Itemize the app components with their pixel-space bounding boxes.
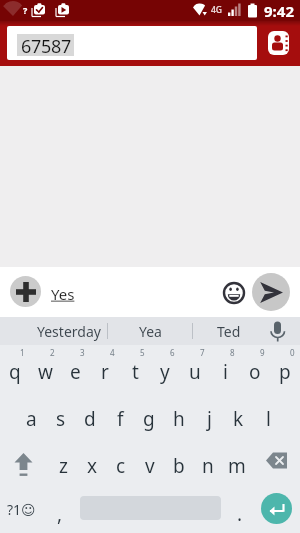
staticText: s bbox=[56, 406, 66, 432]
button[interactable]: 67587 bbox=[7, 26, 257, 60]
staticText: 2 bbox=[50, 347, 55, 357]
button[interactable]: j bbox=[194, 392, 224, 439]
button[interactable] bbox=[228, 486, 252, 533]
staticText: k bbox=[233, 406, 244, 432]
staticText: x bbox=[87, 453, 98, 479]
button[interactable]: i bbox=[210, 345, 240, 392]
button[interactable]: d bbox=[75, 392, 105, 439]
button[interactable]: x bbox=[77, 439, 107, 486]
staticText: . bbox=[237, 501, 243, 527]
button[interactable] bbox=[10, 276, 41, 307]
button[interactable]: z bbox=[48, 439, 78, 486]
staticText: Yea bbox=[139, 322, 162, 341]
staticText: q bbox=[9, 359, 21, 385]
button[interactable]: Yesterday bbox=[31, 317, 107, 345]
staticText: y bbox=[160, 359, 170, 385]
staticText: l bbox=[266, 406, 271, 432]
staticText: 9 bbox=[260, 347, 265, 357]
staticText: z bbox=[59, 453, 68, 479]
button[interactable] bbox=[268, 31, 289, 55]
staticText: i bbox=[223, 359, 228, 385]
staticText: n bbox=[202, 453, 214, 479]
button[interactable]: n bbox=[193, 439, 223, 486]
button[interactable]: Yea bbox=[108, 317, 192, 345]
button[interactable]: p bbox=[270, 345, 300, 392]
button[interactable] bbox=[261, 493, 292, 524]
button[interactable]: m bbox=[222, 439, 252, 486]
button[interactable]: f bbox=[105, 392, 135, 439]
staticText: o bbox=[249, 359, 261, 385]
button[interactable]: s bbox=[46, 392, 76, 439]
staticText: h bbox=[173, 406, 185, 432]
button[interactable]: u bbox=[180, 345, 210, 392]
staticText: 9:42 bbox=[264, 1, 294, 21]
staticText: w bbox=[38, 359, 53, 385]
button[interactable]: v bbox=[135, 439, 165, 486]
staticText: r bbox=[101, 359, 109, 385]
staticText: 1 bbox=[20, 347, 25, 357]
button[interactable]: l bbox=[253, 392, 283, 439]
button[interactable]: o bbox=[240, 345, 270, 392]
button[interactable]: k bbox=[223, 392, 253, 439]
staticText: 4G bbox=[211, 4, 223, 16]
button[interactable] bbox=[2, 486, 40, 533]
button[interactable]: Ted bbox=[193, 317, 265, 345]
staticText: a bbox=[26, 406, 37, 432]
staticText: Yesterday bbox=[37, 322, 101, 341]
button[interactable]: r bbox=[90, 345, 120, 392]
staticText: ?1☺ bbox=[7, 500, 36, 519]
staticText: m bbox=[228, 453, 246, 479]
staticText: t bbox=[132, 359, 139, 385]
staticText: Ted bbox=[217, 322, 241, 341]
button[interactable] bbox=[256, 439, 296, 486]
staticText: 4 bbox=[110, 347, 115, 357]
button[interactable]: a bbox=[16, 392, 46, 439]
staticText: ? bbox=[23, 4, 28, 16]
button[interactable]: y bbox=[150, 345, 180, 392]
button[interactable]: c bbox=[106, 439, 136, 486]
staticText: Yes bbox=[51, 284, 75, 304]
button[interactable] bbox=[252, 273, 290, 311]
button[interactable] bbox=[223, 282, 245, 304]
staticText: 6 bbox=[170, 347, 175, 357]
staticText: c bbox=[116, 453, 126, 479]
staticText: 67587 bbox=[21, 34, 71, 56]
staticText: g bbox=[143, 406, 155, 432]
staticText: 3 bbox=[80, 347, 85, 357]
staticText: f bbox=[117, 406, 124, 432]
staticText: p bbox=[279, 359, 291, 385]
staticText: 0 bbox=[290, 347, 295, 357]
staticText: 5 bbox=[140, 347, 145, 357]
staticText: 7 bbox=[200, 347, 205, 357]
staticText: , bbox=[57, 501, 63, 527]
staticText: e bbox=[70, 359, 81, 385]
staticText: b bbox=[173, 453, 185, 479]
staticText: j bbox=[207, 406, 212, 432]
button[interactable]: e bbox=[60, 345, 90, 392]
button[interactable] bbox=[48, 486, 72, 533]
staticText: u bbox=[189, 359, 201, 385]
button[interactable]: t bbox=[120, 345, 150, 392]
button[interactable] bbox=[4, 439, 44, 486]
button[interactable]: g bbox=[134, 392, 164, 439]
button[interactable] bbox=[266, 317, 290, 345]
button[interactable]: h bbox=[164, 392, 194, 439]
staticText: v bbox=[145, 453, 155, 479]
button[interactable]: w bbox=[30, 345, 60, 392]
button[interactable]: q bbox=[0, 345, 30, 392]
button[interactable]: b bbox=[164, 439, 194, 486]
staticText: 8 bbox=[230, 347, 235, 357]
staticText: d bbox=[84, 406, 96, 432]
